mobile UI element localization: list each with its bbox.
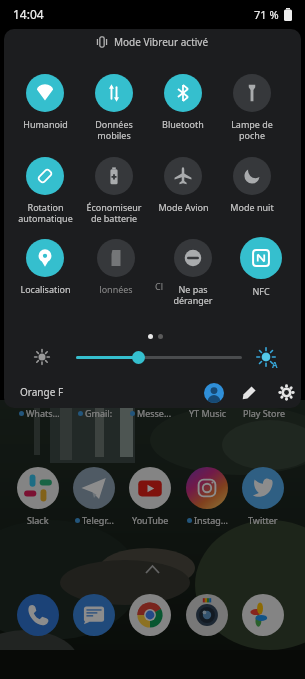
staticText: Slack [27,514,49,526]
button[interactable] [204,383,224,403]
staticText: 14:04 [13,6,44,22]
staticText: NFC [252,285,270,297]
staticText: Localisation [20,283,71,295]
staticText: Gmail: [85,407,113,419]
button[interactable] [178,594,236,636]
button[interactable]: NFC [221,237,301,297]
staticText: Économiseur de batterie [86,201,142,224]
button[interactable]: Slack [9,467,67,526]
staticText: Cl [155,280,164,292]
staticText: Bluetooth [162,118,204,130]
button[interactable]: Mode Vibreur activé [96,35,209,49]
staticText: Whats... [26,407,60,419]
button[interactable] [278,384,295,401]
staticText: Mode Avion [158,201,209,213]
button[interactable]: YouTube [121,467,179,526]
staticText: Telegr... [82,514,114,526]
staticText: Play Store [243,407,285,419]
staticText: Données mobiles [95,118,133,141]
button[interactable]: Données mobiles [74,74,154,141]
button[interactable]: Humanoid [5,74,85,130]
button[interactable]: Ne pas déranger [153,239,233,306]
staticText: Instag... [194,514,228,526]
button[interactable]: Instag... [178,467,236,526]
button[interactable]: Bluetooth [143,74,223,130]
staticText: Mode nuit [230,201,274,213]
button[interactable]: Rotation automatique [5,157,85,224]
button[interactable]: Lampe de poche [212,74,292,141]
button[interactable]: Localisation [5,239,85,295]
button[interactable] [241,384,258,401]
staticText: Humanoid [23,118,68,130]
staticText: 71 % [254,7,279,22]
staticText: A [272,359,278,370]
button[interactable]: Telegr... [65,467,123,526]
button[interactable] [234,594,292,636]
staticText: Mode Vibreur activé [114,35,209,49]
staticText: Twitter [248,514,278,526]
staticText: Lampe de poche [231,118,273,141]
button[interactable] [132,351,145,364]
staticText: YT Music [189,407,227,419]
button[interactable]: Mode nuit [212,157,292,213]
staticText: Ne pas déranger [173,283,213,306]
button[interactable] [121,594,179,636]
button[interactable]: lonnées [76,239,156,295]
button[interactable]: Économiseur de batterie [74,157,154,224]
button[interactable]: Mode Avion [143,157,223,213]
button[interactable] [65,594,123,636]
staticText: Rotation automatique [18,201,73,224]
button[interactable] [34,349,50,365]
button[interactable] [9,594,67,636]
staticText: Messe... [137,407,172,419]
staticText: Orange F [20,385,64,399]
button[interactable]: Twitter [234,467,292,526]
button[interactable] [256,347,276,367]
staticText: lonnées [99,283,133,295]
staticText: YouTube [132,514,169,526]
